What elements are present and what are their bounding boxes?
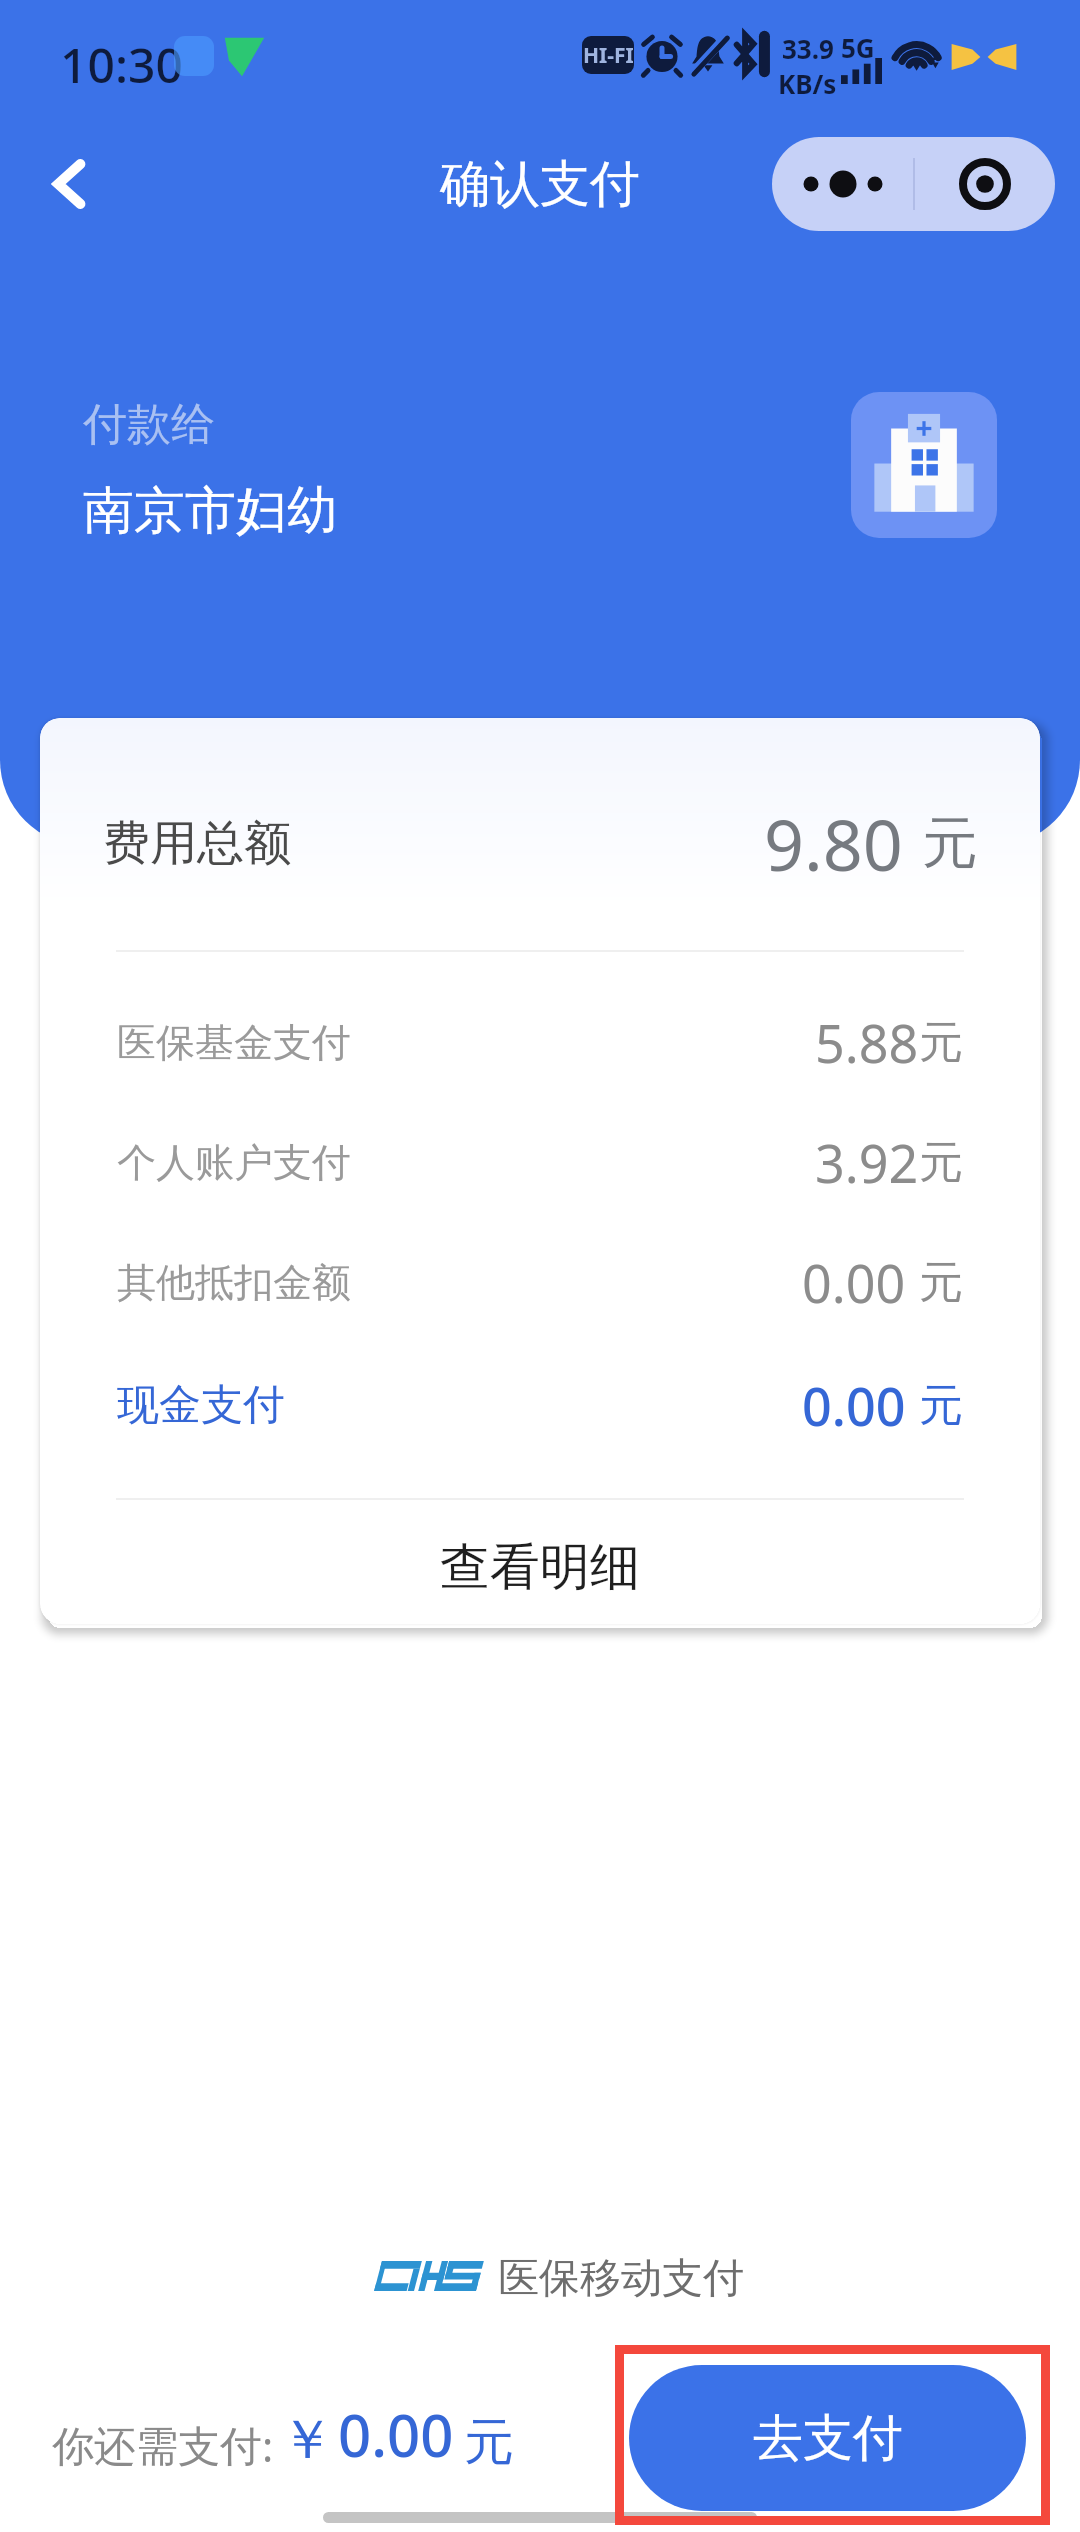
staticText: 0.00 (802, 1370, 919, 1441)
staticText: 医保基金支付 (117, 1018, 351, 1067)
button[interactable]: 查看明细 (40, 1504, 1040, 1624)
staticText: 5G (841, 30, 875, 65)
staticText: 0.00 (338, 2395, 454, 2474)
staticText: 医保移动支付 (498, 2253, 744, 2305)
staticText: : (262, 2417, 274, 2474)
staticText: KB/s (778, 66, 837, 101)
staticText: 付款给 (83, 397, 215, 452)
staticText: 元 (922, 808, 978, 879)
staticText: 0.00 (802, 1247, 919, 1318)
staticText: 9.80 (764, 796, 922, 891)
button[interactable]: 去支付 (629, 2365, 1026, 2511)
staticText: 南京市妇幼 (83, 479, 338, 543)
staticText: 其他抵扣金额 (117, 1258, 351, 1307)
staticText: 查看明细 (440, 1536, 640, 1599)
staticText: 元 (919, 1015, 963, 1070)
staticText: 个人账户支付 (117, 1138, 351, 1187)
staticText: ￥ (280, 2406, 334, 2474)
staticText: 元 (919, 1135, 963, 1190)
button[interactable]: Back (24, 139, 114, 229)
staticText: HI-FI (583, 41, 634, 70)
staticText: 33.9 (782, 31, 834, 66)
button[interactable]: Hospital avatar (851, 392, 997, 538)
staticText: 5.88 (815, 1007, 919, 1078)
staticText: 现金支付 (117, 1379, 285, 1432)
staticText: 元 (464, 2411, 514, 2474)
staticText: 10:30 (60, 32, 183, 97)
staticText: 元 (919, 1255, 963, 1310)
staticText: 费用总额 (103, 814, 291, 873)
staticText: 确认支付 (440, 153, 640, 216)
staticText: 你还需支付 (52, 2421, 262, 2474)
button[interactable]: 付款给 (83, 397, 338, 543)
staticText: 3.92 (815, 1127, 919, 1198)
staticText: 元 (919, 1378, 963, 1433)
staticText: 去支付 (753, 2407, 903, 2470)
button[interactable]: More options (772, 137, 913, 231)
button[interactable]: Close mini program (914, 137, 1055, 231)
